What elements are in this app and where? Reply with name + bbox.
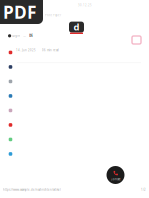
button[interactable]: Contact Us	[106, 166, 124, 184]
button[interactable]: Share on Instagram	[5, 103, 16, 118]
staticText: 14. Jun 2025	[16, 48, 36, 52]
button[interactable]: Share on Reddit	[5, 45, 16, 60]
staticText: 06 min read	[42, 48, 59, 52]
button[interactable]: Share on WhatsApp	[5, 132, 16, 147]
staticText: 1/2	[141, 188, 146, 192]
button[interactable]: Share on Facebook	[5, 60, 16, 74]
staticText: DE	[29, 34, 32, 38]
staticText: —	[23, 34, 26, 38]
staticText: d	[73, 20, 79, 33]
button[interactable]: Share on YouTube	[5, 118, 16, 132]
staticText: Contact	[110, 177, 120, 181]
staticText: https://www.example.de/nachrichten/artik…	[3, 188, 61, 192]
button[interactable]: Share on X	[5, 74, 16, 89]
staticText: PDF	[3, 0, 37, 24]
staticText: Print Paper	[45, 13, 61, 17]
button[interactable]: Share on Telegram	[5, 147, 16, 161]
staticText: Login	[12, 34, 20, 38]
button[interactable]: Share on LinkedIn	[5, 89, 16, 103]
staticText: 30.12.25	[78, 3, 92, 7]
